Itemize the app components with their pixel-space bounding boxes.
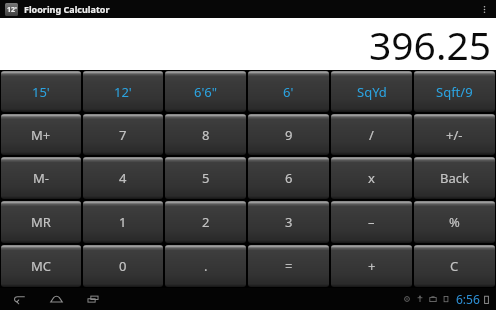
staticText: % <box>449 213 460 231</box>
button[interactable]: – <box>331 201 412 243</box>
button[interactable]: More options <box>476 1 492 17</box>
button[interactable]: 6'6" <box>165 71 246 112</box>
staticText: 6:56 <box>456 291 480 307</box>
button[interactable]: 2 <box>165 201 246 243</box>
button[interactable]: % <box>414 201 495 243</box>
staticText: 2 <box>202 213 210 231</box>
staticText: x <box>368 169 375 187</box>
button[interactable]: 6' <box>248 71 329 112</box>
button[interactable]: 9 <box>248 114 329 155</box>
button[interactable]: 5 <box>165 157 246 199</box>
staticText: 0 <box>119 257 127 275</box>
button[interactable]: 4 <box>83 157 163 199</box>
staticText: 3 <box>285 213 293 231</box>
button[interactable]: MR <box>1 201 81 243</box>
staticText: MC <box>31 257 52 275</box>
button[interactable]: 1 <box>83 201 163 243</box>
button[interactable]: 8 <box>165 114 246 155</box>
staticText: 7 <box>119 126 127 144</box>
staticText: M+ <box>31 126 51 144</box>
button[interactable]: Recent apps <box>81 288 105 310</box>
button[interactable]: Back <box>7 288 31 310</box>
button[interactable]: M+ <box>1 114 81 155</box>
button[interactable]: Home <box>44 288 68 310</box>
staticText: 4 <box>119 169 127 187</box>
staticText: – <box>368 213 375 231</box>
button[interactable]: = <box>248 245 329 287</box>
button[interactable]: 12' <box>83 71 163 112</box>
staticText: / <box>369 126 374 144</box>
button[interactable]: Back <box>414 157 495 199</box>
staticText: Sqft/9 <box>436 83 473 101</box>
staticText: 1 <box>119 213 127 231</box>
staticText: 6' <box>283 83 294 101</box>
button[interactable]: 6 <box>248 157 329 199</box>
button[interactable]: 15' <box>1 71 81 112</box>
button[interactable]: SqYd <box>331 71 412 112</box>
staticText: +/- <box>446 126 463 144</box>
button[interactable]: +/- <box>414 114 495 155</box>
staticText: 8 <box>202 126 210 144</box>
staticText: 9 <box>285 126 293 144</box>
staticText: 6'6" <box>194 83 218 101</box>
staticText: = <box>285 257 293 275</box>
staticText: . <box>204 257 208 275</box>
button[interactable]: 0 <box>83 245 163 287</box>
staticText: 12' <box>7 5 17 15</box>
button[interactable]: . <box>165 245 246 287</box>
staticText: 15' <box>32 83 50 101</box>
button[interactable]: x <box>331 157 412 199</box>
button[interactable]: / <box>331 114 412 155</box>
button[interactable]: MC <box>1 245 81 287</box>
button[interactable]: 3 <box>248 201 329 243</box>
staticText: M- <box>33 169 49 187</box>
staticText: C <box>450 257 459 275</box>
staticText: 12' <box>114 83 132 101</box>
button[interactable]: M- <box>1 157 81 199</box>
staticText: 5 <box>202 169 210 187</box>
staticText: SqYd <box>357 83 387 101</box>
staticText: 6 <box>285 169 293 187</box>
button[interactable]: C <box>414 245 495 287</box>
staticText: MR <box>31 213 51 231</box>
button[interactable]: 7 <box>83 114 163 155</box>
staticText: Back <box>440 169 469 187</box>
button[interactable]: Sqft/9 <box>414 71 495 112</box>
button[interactable]: + <box>331 245 412 287</box>
staticText: 396.25 <box>369 18 491 70</box>
staticText: Flooring Calculator <box>24 3 110 15</box>
staticText: + <box>368 257 376 275</box>
